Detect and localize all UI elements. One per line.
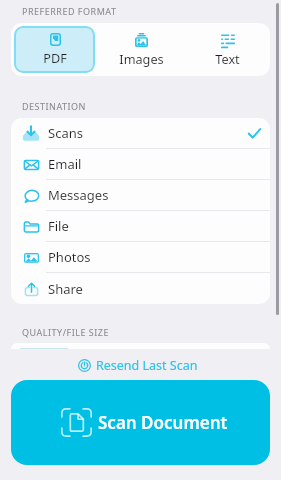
staticText: Scans <box>48 124 83 142</box>
staticText: QUALITY/FILE SIZE <box>22 326 109 338</box>
staticText: Messages <box>48 186 109 204</box>
staticText: Images <box>119 50 164 67</box>
staticText: Email <box>48 155 82 173</box>
button[interactable]: PDF <box>14 26 95 73</box>
staticText: Scan Document <box>98 411 228 434</box>
staticText: Resend Last Scan <box>96 357 198 374</box>
staticText: PREFERRED FORMAT <box>22 5 117 17</box>
button[interactable]: Photos <box>11 242 270 273</box>
staticText: PDF <box>43 49 67 66</box>
button[interactable]: Email <box>11 149 270 180</box>
button[interactable]: Share <box>11 273 270 304</box>
button[interactable]: Messages <box>11 180 270 211</box>
button[interactable]: Resend last scan <box>0 350 281 380</box>
staticText: Share <box>48 280 83 298</box>
button[interactable]: Scans <box>11 118 270 149</box>
staticText: Text <box>215 50 240 67</box>
button[interactable]: Images <box>101 26 181 73</box>
button[interactable]: Text <box>187 26 267 73</box>
staticText: DESTINATION <box>22 100 86 112</box>
other: Resend last scan <box>78 359 91 372</box>
staticText: Photos <box>48 248 91 266</box>
staticText: File <box>48 217 69 235</box>
button[interactable]: Scan Document <box>11 380 270 465</box>
button[interactable]: File <box>11 211 270 242</box>
